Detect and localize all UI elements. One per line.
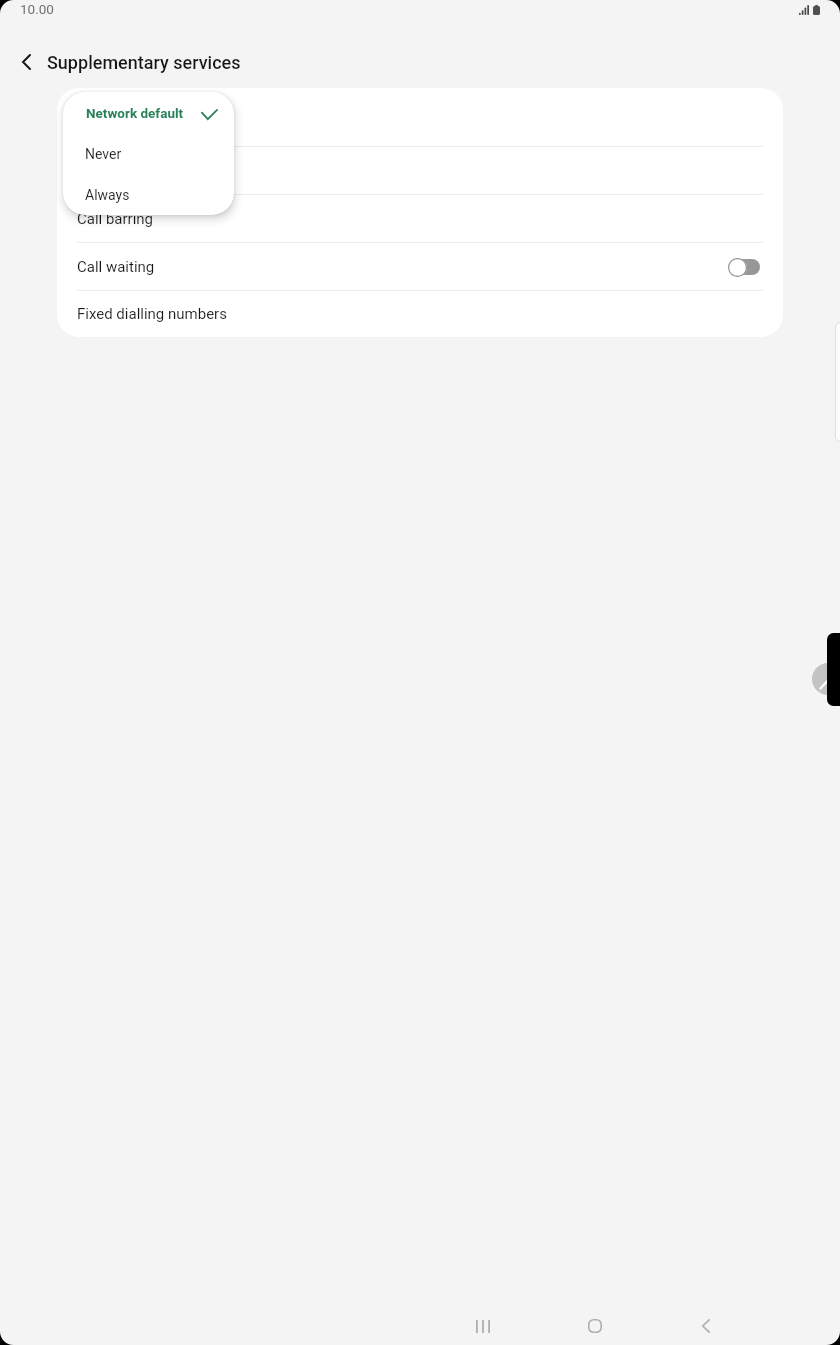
button[interactable]: Caller ID (57, 88, 783, 146)
button[interactable]: Call waiting (57, 243, 783, 290)
button[interactable]: Call barring (57, 195, 783, 242)
button[interactable]: Fixed dialling numbers (57, 291, 783, 337)
staticText: Call waiting (77, 258, 155, 276)
staticText: 10.00 (20, 1, 54, 17)
button[interactable]: Network default (63, 92, 234, 133)
button[interactable]: Navigate up (2, 38, 50, 86)
staticText: Always (85, 187, 130, 203)
button[interactable]: Always (63, 174, 234, 215)
button[interactable]: Recent apps (459, 1302, 507, 1345)
staticText: Never (85, 146, 122, 162)
button[interactable]: Call forwarding (57, 147, 783, 194)
other: Edge panel handle (812, 663, 840, 695)
staticText: Supplementary services (47, 52, 241, 73)
staticText: Call barring (77, 210, 154, 228)
staticText: Network default (86, 105, 184, 121)
staticText: Fixed dialling numbers (77, 305, 227, 323)
button[interactable]: Call waiting toggle (728, 256, 762, 278)
button[interactable]: Back (682, 1302, 730, 1345)
button[interactable]: Never (63, 133, 234, 174)
staticText: Caller ID (77, 108, 133, 126)
button[interactable]: Home (571, 1302, 619, 1345)
